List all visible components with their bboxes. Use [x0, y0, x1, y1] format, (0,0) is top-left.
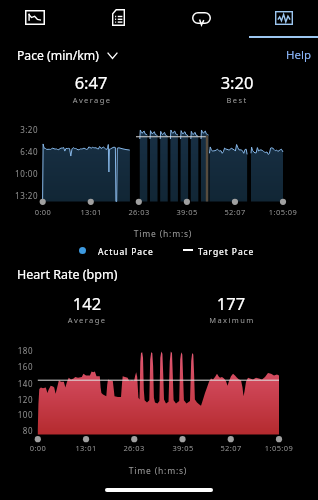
- staticText: 0:00: [0, 207, 103, 217]
- staticText: Target Pace: [198, 246, 255, 258]
- staticText: Pace (min/km): [17, 47, 99, 64]
- staticText: 177: [171, 292, 291, 314]
- staticText: Average: [32, 95, 152, 105]
- button[interactable]: Charts: [263, 0, 305, 35]
- staticText: 52:07: [175, 207, 295, 217]
- staticText: Time (h:m:s): [103, 228, 223, 240]
- staticText: 52:07: [171, 443, 291, 453]
- staticText: Average: [27, 315, 147, 325]
- staticText: 13:20: [0, 190, 38, 201]
- staticText: 3:20: [177, 71, 297, 93]
- staticText: 6:40: [0, 146, 38, 157]
- staticText: 142: [27, 292, 147, 314]
- staticText: 0:00: [0, 443, 98, 453]
- staticText: 1:05:09: [223, 207, 318, 217]
- staticText: 120: [0, 394, 33, 405]
- staticText: 39:05: [123, 443, 243, 453]
- button[interactable]: Change metric: [107, 52, 118, 59]
- staticText: 6:47: [31, 71, 151, 93]
- staticText: 39:05: [127, 207, 247, 217]
- button[interactable]: Details: [97, 0, 139, 35]
- staticText: Maximum: [172, 315, 292, 325]
- button[interactable]: Map: [14, 0, 56, 35]
- staticText: 10:00: [0, 168, 38, 179]
- staticText: 13:01: [26, 443, 146, 453]
- staticText: 140: [0, 378, 33, 389]
- staticText: Best: [177, 95, 297, 105]
- button[interactable]: Laps: [180, 0, 222, 35]
- staticText: 3:20: [0, 124, 38, 135]
- staticText: 160: [0, 361, 33, 372]
- staticText: 1:05:09: [219, 443, 318, 453]
- staticText: 13:01: [31, 207, 151, 217]
- staticText: Heart Rate (bpm): [17, 266, 118, 283]
- staticText: Help: [286, 47, 312, 63]
- button[interactable]: Help: [286, 47, 312, 63]
- staticText: 26:03: [79, 207, 199, 217]
- staticText: 26:03: [74, 443, 194, 453]
- staticText: 100: [0, 409, 33, 420]
- staticText: Time (h:m:s): [98, 465, 218, 477]
- staticText: 180: [0, 345, 33, 356]
- staticText: 80: [0, 425, 33, 436]
- staticText: Actual Pace: [98, 246, 154, 258]
